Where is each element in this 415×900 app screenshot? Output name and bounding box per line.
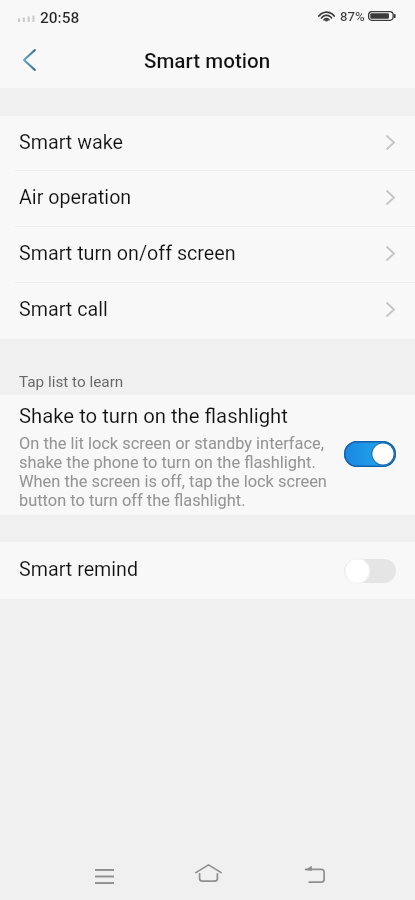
button[interactable]: Back [295,856,335,892]
staticText: Shake to turn on the flashlight [19,404,288,428]
staticText: 87% [340,9,365,24]
button[interactable]: Smart wake [0,116,415,171]
button[interactable]: Smart remind [0,542,415,599]
staticText: Smart wake [19,131,123,154]
button[interactable]: Turn on [344,559,396,583]
staticText: On the lit lock screen or standby interf… [19,434,331,510]
button[interactable]: Back [0,36,52,88]
staticText: 20:58 [40,9,80,27]
button[interactable]: Air operation [0,171,415,227]
staticText: Smart remind [19,558,139,581]
button[interactable]: Smart call [0,283,415,339]
staticText: Smart turn on/off screen [19,242,236,265]
button[interactable]: Shake to turn on the flashlight [0,395,415,515]
staticText: Tap list to learn [19,373,124,391]
button[interactable]: Smart turn on/off screen [0,227,415,283]
button[interactable]: Turn off [344,441,396,467]
button[interactable]: Recent apps [84,858,124,894]
staticText: Air operation [19,186,132,209]
button[interactable]: Home [188,855,228,891]
staticText: Smart call [19,298,108,321]
staticText: Smart motion [144,49,271,73]
